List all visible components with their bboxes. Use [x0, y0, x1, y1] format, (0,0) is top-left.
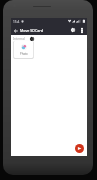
button[interactable]: Storage options — [29, 36, 35, 42]
staticText: Photo — [20, 52, 28, 56]
button[interactable]: Move files — [75, 144, 84, 153]
button[interactable]: More options — [79, 27, 85, 33]
button[interactable]: Photo — [14, 41, 33, 58]
staticText: 15:4 — [13, 20, 20, 24]
staticText: Move SDCard — [20, 28, 43, 33]
button[interactable]: Navigate up — [12, 27, 19, 34]
button[interactable]: Settings — [69, 26, 77, 34]
staticText: Internal — [13, 37, 25, 41]
